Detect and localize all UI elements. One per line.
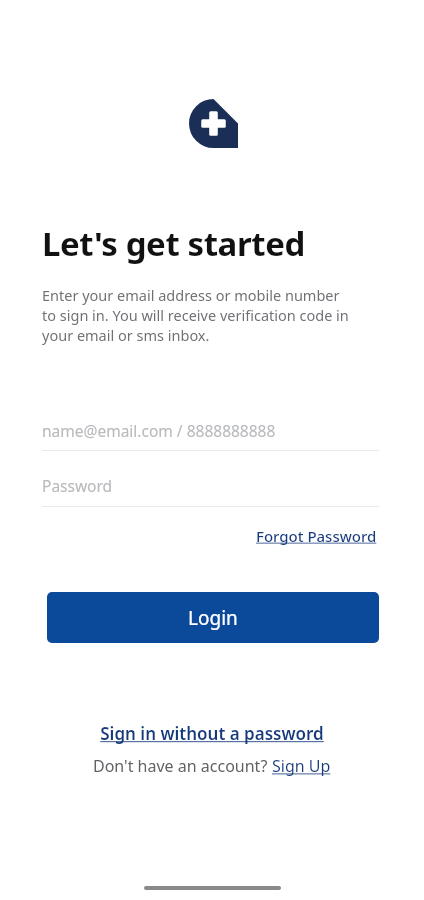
button[interactable]: Password [42,465,379,506]
button[interactable]: Login [47,592,379,643]
staticText: name@email.com / 8888888888 [42,420,276,441]
staticText: Let's get started [42,221,306,266]
staticText: Don't have an account? [93,755,272,777]
staticText: Enter your email address or mobile numbe… [42,285,387,345]
staticText: Login [188,605,238,631]
button[interactable]: Sign in without a password [96,719,328,748]
other: App logo [189,99,238,148]
button[interactable]: Forgot Password [254,522,379,550]
button[interactable]: Sign Up [272,755,331,777]
button[interactable]: name@email.com / 8888888888 [42,410,379,451]
staticText: Password [42,475,113,496]
